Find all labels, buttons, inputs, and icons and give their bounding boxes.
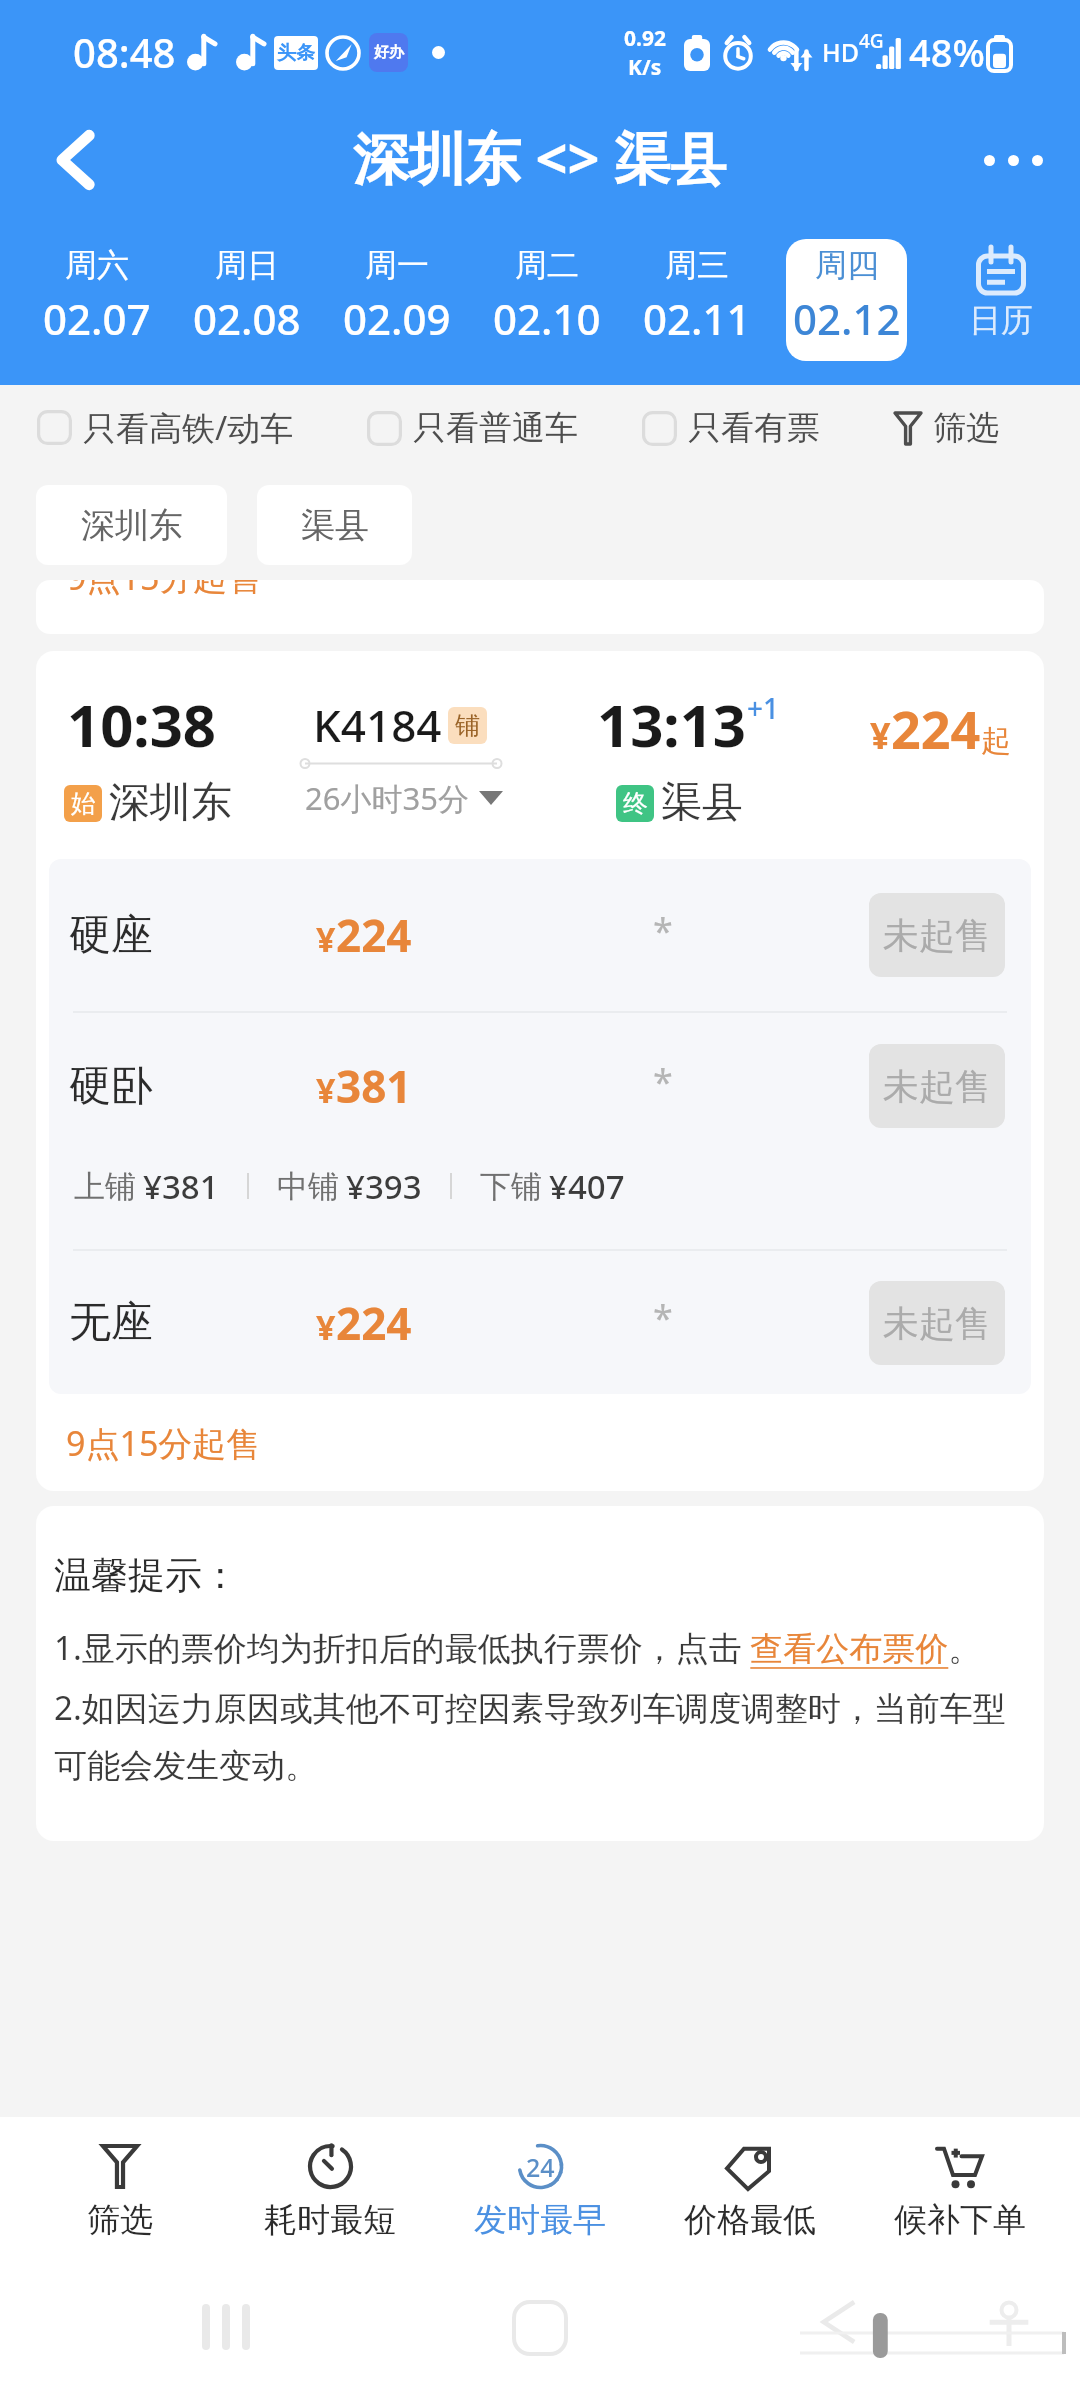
staticText: 4G <box>859 28 884 54</box>
button[interactable]: 只看高铁/动车 <box>37 405 294 450</box>
staticText: 02.09 <box>343 290 451 347</box>
staticText: ¥407 <box>549 1164 625 1209</box>
button[interactable]: More options <box>958 110 1068 210</box>
button[interactable]: 9点15分起售 <box>36 1394 1044 1491</box>
staticText: 只看有票 <box>688 407 820 449</box>
staticText: 渠县 <box>661 777 743 829</box>
button[interactable]: 筛选 <box>893 407 999 449</box>
button[interactable]: 只看普通车 <box>367 407 578 449</box>
staticText: 周日 <box>215 245 279 285</box>
staticText: 224 <box>336 905 412 965</box>
staticText: 只看普通车 <box>413 407 578 449</box>
button[interactable]: 24 <box>435 2117 645 2241</box>
staticText: 只看高铁/动车 <box>83 405 294 450</box>
staticText: 周四 <box>815 245 879 285</box>
staticText: 周六 <box>65 245 129 285</box>
staticText: 下铺 <box>480 1167 542 1206</box>
staticText: 未起售 <box>883 913 991 958</box>
staticText: ¥381 <box>143 1164 219 1209</box>
button[interactable]: 周一 <box>336 239 457 361</box>
staticText: 铺 <box>455 710 480 741</box>
staticText: 381 <box>336 1056 412 1116</box>
staticText: 24 <box>526 2150 555 2184</box>
button[interactable]: 只看有票 <box>642 407 820 449</box>
staticText: +1 <box>747 689 780 727</box>
staticText: 深圳东 <> 渠县 <box>353 119 727 195</box>
staticText: 筛选 <box>933 407 999 449</box>
button[interactable]: 未起售 <box>869 1044 1005 1128</box>
staticText: 周二 <box>515 245 579 285</box>
staticText: 10:38 <box>67 685 217 764</box>
staticText: 02.10 <box>493 290 601 347</box>
button[interactable]: 渠县 <box>257 485 412 565</box>
staticText: 上铺 <box>74 1167 136 1206</box>
staticText: 温馨提示： <box>54 1552 239 1599</box>
staticText: 未起售 <box>883 1301 991 1346</box>
staticText: 筛选 <box>87 2199 153 2241</box>
staticText: 价格最低 <box>684 2199 816 2241</box>
staticText: * <box>653 1057 673 1106</box>
button[interactable]: 深圳东 <box>36 485 227 565</box>
button[interactable]: 未起售 <box>869 1281 1005 1365</box>
staticText: 02.07 <box>43 290 151 347</box>
staticText: 02.12 <box>793 290 901 347</box>
staticText: HD <box>822 35 859 69</box>
staticText: 13:13 <box>597 685 747 764</box>
button[interactable]: 候补下单 <box>855 2117 1065 2241</box>
button[interactable]: Home <box>514 2302 566 2354</box>
button[interactable]: 10:38 <box>36 651 1044 859</box>
button[interactable]: 周二 <box>486 239 607 361</box>
staticText: 硬卧 <box>69 1060 316 1113</box>
staticText: 中铺 <box>277 1167 339 1206</box>
staticText: 终 <box>623 788 648 819</box>
staticText: 08:48 <box>73 25 176 79</box>
button[interactable]: 筛选 <box>15 2117 225 2241</box>
button[interactable]: 价格最低 <box>645 2117 855 2241</box>
button[interactable]: 耗时最短 <box>225 2117 435 2241</box>
staticText: 9点15分起售 <box>67 580 262 600</box>
button[interactable]: Back <box>820 2302 856 2342</box>
staticText: K/s <box>628 53 662 82</box>
button[interactable]: 日历 <box>921 215 1080 385</box>
button[interactable]: 周六 <box>36 239 157 361</box>
button[interactable]: 未起售 <box>869 893 1005 977</box>
staticText: ¥ <box>870 711 891 760</box>
staticText: ¥ <box>316 916 336 962</box>
staticText: ¥ <box>316 1067 336 1113</box>
button[interactable]: Back <box>19 105 129 215</box>
staticText: 未起售 <box>883 1064 991 1109</box>
button[interactable]: 硬座 <box>49 859 1031 1011</box>
staticText: 耗时最短 <box>264 2199 396 2241</box>
staticText: 深圳东 <box>81 504 183 547</box>
staticText: 224 <box>336 1293 412 1353</box>
staticText: 02.11 <box>643 290 751 347</box>
staticText: 26小时35分 <box>305 777 469 819</box>
button[interactable]: 硬卧 <box>49 1013 1031 1159</box>
staticText: 头条 <box>277 41 315 65</box>
staticText: 深圳东 <box>109 777 232 829</box>
button[interactable]: Recent apps <box>202 2304 250 2350</box>
button[interactable]: 周四 <box>786 239 907 361</box>
staticText: 硬座 <box>69 909 316 962</box>
button[interactable]: 周三 <box>636 239 757 361</box>
staticText: 渠县 <box>301 504 369 547</box>
staticText: * <box>653 1293 673 1342</box>
staticText: 9点15分起售 <box>66 1420 261 1466</box>
staticText: 起 <box>981 722 1011 760</box>
staticText: * <box>653 906 673 955</box>
staticText: 02.08 <box>193 290 301 347</box>
staticText: 日历 <box>969 300 1033 340</box>
staticText: 0.92 <box>624 24 666 53</box>
staticText: ¥393 <box>346 1164 422 1209</box>
staticText: 候补下单 <box>894 2199 1026 2241</box>
button[interactable]: 无座 <box>49 1251 1031 1394</box>
staticText: 周三 <box>665 245 729 285</box>
button[interactable]: 周日 <box>186 239 307 361</box>
staticText: 224 <box>891 693 981 764</box>
button[interactable]: 1.显示的票价均为折扣后的最低执行票价，点击 查看公布票价。 2.如因运力原因或… <box>54 1625 1030 1786</box>
staticText: 始 <box>71 788 96 819</box>
staticText: K4184 <box>313 695 442 755</box>
staticText: 发时最早 <box>474 2199 606 2241</box>
staticText: 48% <box>909 26 985 78</box>
button[interactable]: 9点15分起售 <box>36 580 1044 634</box>
